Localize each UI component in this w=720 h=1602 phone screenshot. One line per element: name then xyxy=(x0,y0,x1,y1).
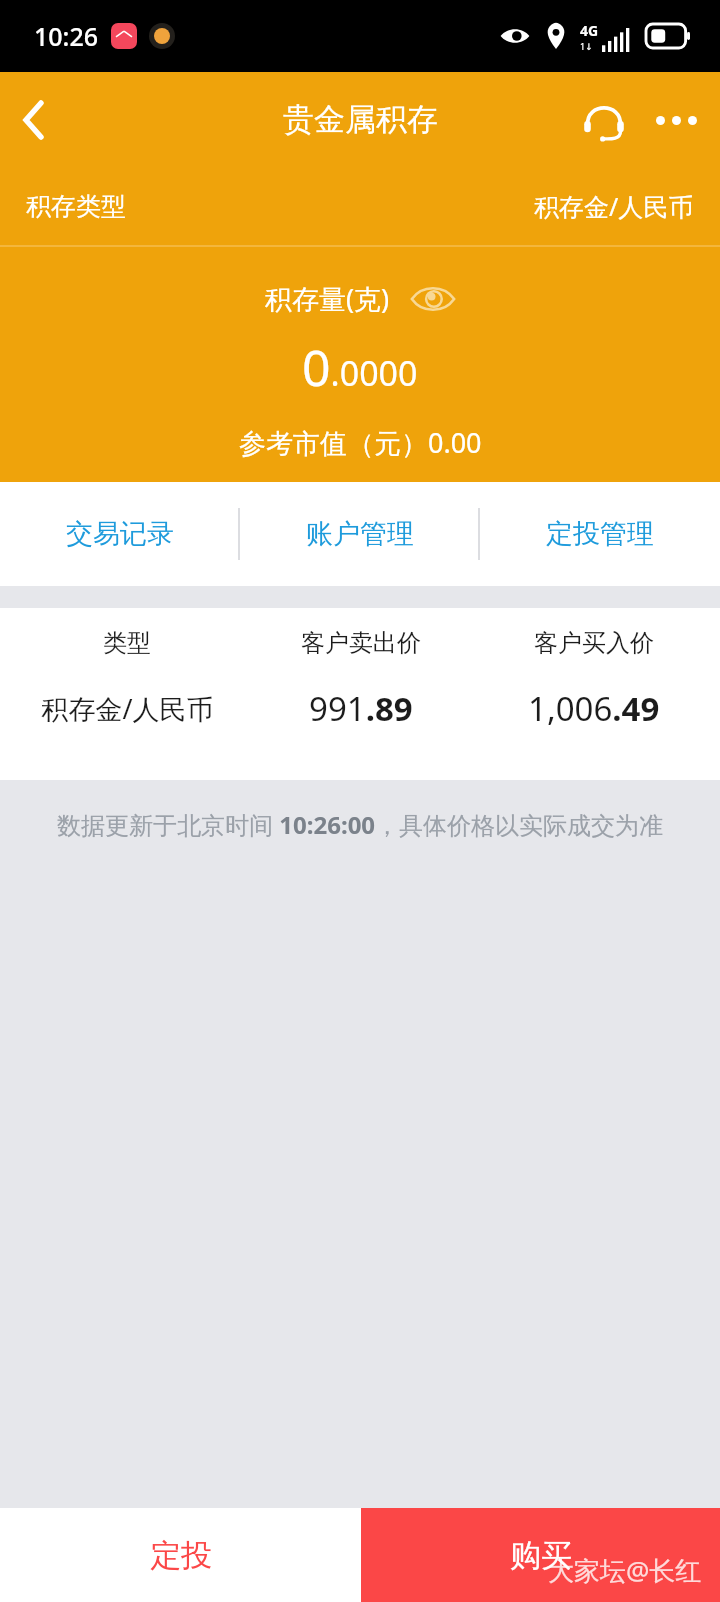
button[interactable]: 账户管理 xyxy=(240,482,480,586)
staticText: 购买 xyxy=(510,1536,572,1575)
staticText: 客户买入价 xyxy=(534,628,654,658)
button[interactable]: More options xyxy=(650,94,702,146)
staticText: 991.89 xyxy=(309,686,413,731)
button[interactable]: 积存类型 xyxy=(0,167,720,245)
button[interactable]: Customer service xyxy=(576,92,632,148)
button[interactable]: 定投管理 xyxy=(480,482,720,586)
staticText: 积存量(克) xyxy=(265,280,390,317)
staticText: 积存金/人民币 xyxy=(41,690,214,727)
staticText: 贵金属积存 xyxy=(283,100,438,139)
staticText: 类型 xyxy=(103,628,151,658)
staticText: 数据更新于北京时间 10:26:00，具体价格以实际成交为准 xyxy=(57,808,664,841)
staticText: 客户卖出价 xyxy=(301,628,421,658)
button[interactable]: 购买 xyxy=(361,1508,720,1602)
staticText: 1,006.49 xyxy=(528,686,660,731)
staticText: 定投管理 xyxy=(546,517,654,551)
staticText: 参考市值（元）0.00 xyxy=(239,424,482,461)
button[interactable]: 交易记录 xyxy=(0,482,240,586)
staticText: 4G xyxy=(580,21,599,40)
button[interactable]: 定投 xyxy=(0,1508,361,1602)
staticText: 积存金/人民币 xyxy=(534,189,694,223)
staticText: 交易记录 xyxy=(66,517,174,551)
staticText: 大家坛@长红 xyxy=(548,1552,702,1588)
staticText: 1↓ xyxy=(580,40,593,52)
staticText: 0.0000 xyxy=(302,333,418,401)
button[interactable]: Back xyxy=(6,92,62,148)
button[interactable]: Toggle balance visibility xyxy=(265,280,456,317)
staticText: 账户管理 xyxy=(306,517,414,551)
staticText: 积存类型 xyxy=(26,191,126,222)
staticText: 定投 xyxy=(150,1536,212,1575)
staticText: 10:26 xyxy=(34,19,99,53)
